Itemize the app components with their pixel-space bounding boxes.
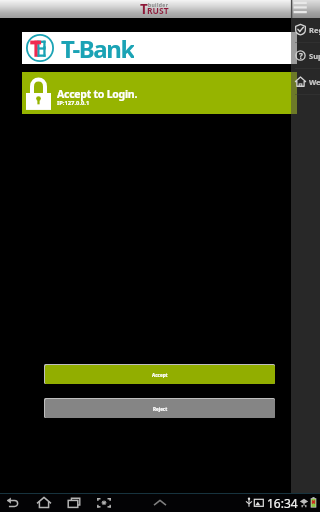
staticText: Regi [309, 25, 320, 35]
button[interactable]: Regi [295, 17, 320, 42]
staticText: 16:34 [267, 495, 298, 511]
staticText: IP:127.0.0.1 [57, 99, 90, 107]
staticText: Accept [152, 372, 168, 378]
staticText: Supp [309, 51, 320, 61]
staticText: builder [148, 2, 169, 9]
staticText: RUST [147, 5, 169, 17]
staticText: Web [309, 77, 320, 87]
button[interactable]: Web [295, 69, 320, 94]
button[interactable]: Accept [45, 365, 275, 384]
staticText: T-Bank [61, 32, 134, 64]
button[interactable]: ? [295, 43, 320, 68]
staticText: T [140, 0, 148, 18]
staticText: Reject [153, 406, 168, 412]
staticText: ? [299, 50, 303, 61]
button[interactable]: Accept to Login. [22, 72, 297, 114]
button[interactable]: Reject [45, 399, 275, 418]
button[interactable]: Open navigation menu [291, 0, 320, 18]
staticText: Accept to Login. [57, 87, 138, 101]
